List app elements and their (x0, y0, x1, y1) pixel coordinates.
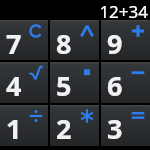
staticText: 6 (107, 67, 123, 104)
staticText: 7 (6, 25, 22, 62)
staticText: 1 (6, 110, 22, 147)
button[interactable]: 8 Power (50, 20, 99, 60)
button[interactable]: 4 Square root (0, 62, 48, 103)
button[interactable]: 1 Divide (0, 105, 48, 146)
staticText: 4 (6, 67, 22, 104)
staticText: 12+34 (99, 0, 148, 20)
staticText: 8 (56, 25, 72, 62)
button[interactable]: 3 Equals (101, 105, 150, 146)
staticText: 2 (56, 110, 72, 147)
button[interactable]: 9 Plus (101, 20, 150, 60)
staticText: 9 (107, 25, 123, 62)
staticText: 3 (107, 110, 123, 147)
button[interactable]: 7 Clear (0, 20, 48, 60)
button[interactable]: 5 Square (50, 62, 99, 103)
button[interactable]: 6 Minus (101, 62, 150, 103)
button[interactable]: 2 Multiply (50, 105, 99, 146)
staticText: 5 (56, 67, 72, 104)
button[interactable]: 12+34 (0, 0, 150, 20)
